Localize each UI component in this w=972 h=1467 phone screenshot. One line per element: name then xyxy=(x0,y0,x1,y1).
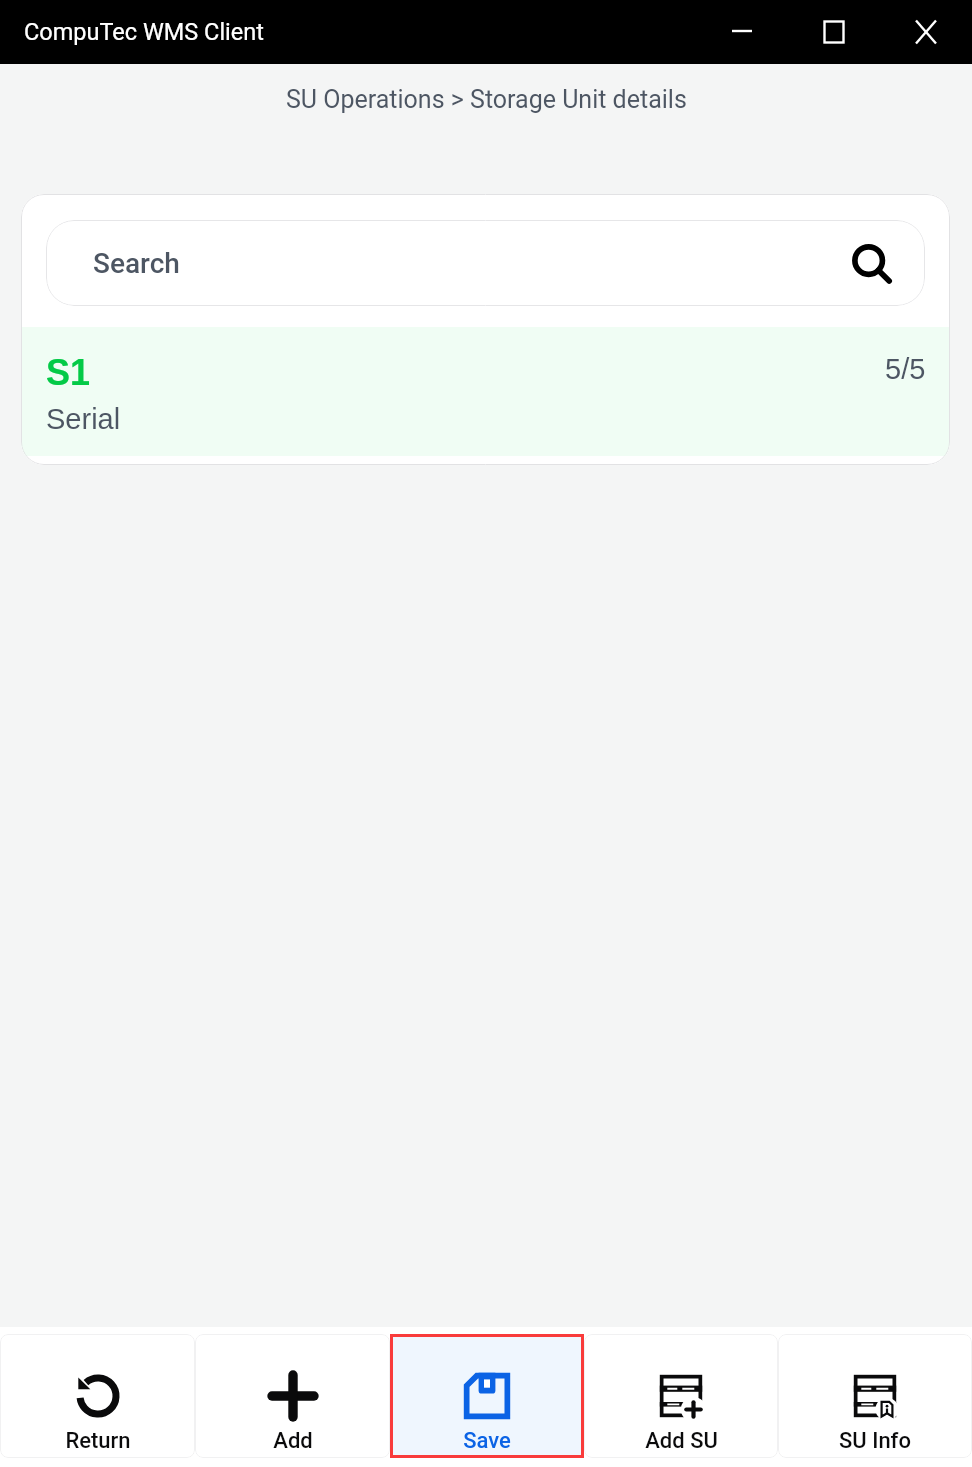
staticText: SU Operations > Storage Unit details xyxy=(286,85,687,114)
staticText: Add xyxy=(273,1428,313,1454)
button[interactable]: S1 xyxy=(21,327,950,456)
button[interactable]: Search xyxy=(843,236,897,290)
staticText: Return xyxy=(65,1428,131,1454)
button[interactable]: Close xyxy=(880,0,972,64)
button[interactable]: Add xyxy=(195,1334,390,1458)
staticText: Add SU xyxy=(645,1428,718,1454)
button[interactable]: Add SU xyxy=(584,1334,778,1458)
staticText: 5/5 xyxy=(885,353,926,385)
button[interactable]: Save xyxy=(390,1334,584,1458)
button[interactable]: Minimize xyxy=(696,0,788,64)
staticText: Serial xyxy=(46,403,121,435)
staticText: Search xyxy=(93,247,180,280)
staticText: CompuTec WMS Client xyxy=(24,18,264,46)
staticText: S1 xyxy=(46,352,91,392)
button[interactable]: Return xyxy=(0,1334,195,1458)
button[interactable]: Maximize xyxy=(788,0,880,64)
button[interactable]: SU Info xyxy=(778,1334,972,1458)
staticText: SU Info xyxy=(839,1428,911,1454)
button[interactable]: Search xyxy=(46,220,925,306)
staticText: Save xyxy=(463,1428,511,1454)
